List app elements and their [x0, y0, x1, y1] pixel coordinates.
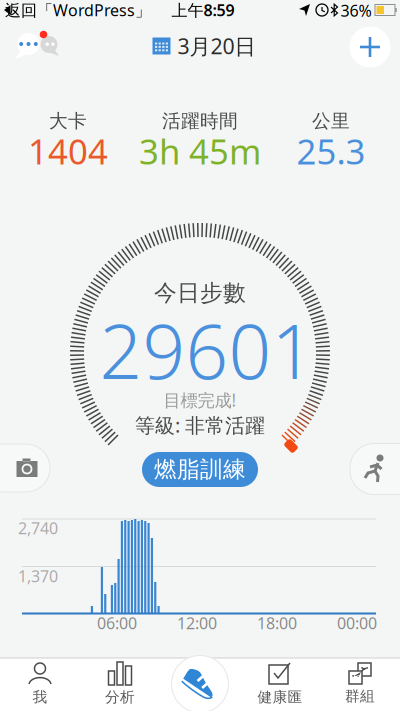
- staticText: 目標完成!: [163, 388, 236, 411]
- button[interactable]: 健康匯: [245, 659, 315, 709]
- staticText: 06:00: [97, 612, 137, 634]
- button[interactable]: [0, 0, 400, 711]
- staticText: 18:00: [257, 612, 297, 634]
- staticText: 等級: 非常活躍: [135, 412, 265, 438]
- button[interactable]: [0, 444, 50, 492]
- staticText: 分析: [105, 688, 135, 706]
- staticText: 健康匯: [257, 688, 302, 706]
- staticText: 返回「WordPress」: [5, 0, 151, 21]
- staticText: 25.3: [296, 128, 365, 174]
- button[interactable]: 返回「WordPress」: [5, 0, 151, 21]
- button[interactable]: 3月20日: [152, 32, 255, 60]
- button[interactable]: [350, 443, 400, 494]
- button[interactable]: 群組: [325, 659, 395, 709]
- button[interactable]: 我: [5, 659, 75, 709]
- staticText: 上午8:59: [171, 0, 234, 21]
- button[interactable]: [349, 26, 390, 67]
- button[interactable]: [171, 655, 228, 711]
- staticText: 今日步數: [154, 279, 246, 307]
- staticText: 12:00: [177, 612, 217, 634]
- staticText: 大卡: [49, 109, 87, 132]
- staticText: 燃脂訓練: [154, 456, 246, 483]
- staticText: 29601: [99, 300, 314, 400]
- button[interactable]: 分析: [85, 659, 155, 709]
- staticText: 36%: [340, 0, 371, 21]
- button[interactable]: 燃脂訓練: [142, 452, 258, 487]
- staticText: 我: [32, 688, 47, 706]
- staticText: 群組: [345, 687, 375, 705]
- staticText: 2,740: [18, 517, 58, 539]
- staticText: 1404: [28, 128, 108, 174]
- staticText: 1,370: [18, 565, 58, 587]
- staticText: 3月20日: [177, 32, 255, 60]
- staticText: 00:00: [337, 612, 377, 634]
- staticText: 活躍時間: [162, 109, 238, 132]
- staticText: 公里: [312, 109, 350, 132]
- staticText: 3h 45m: [139, 128, 261, 174]
